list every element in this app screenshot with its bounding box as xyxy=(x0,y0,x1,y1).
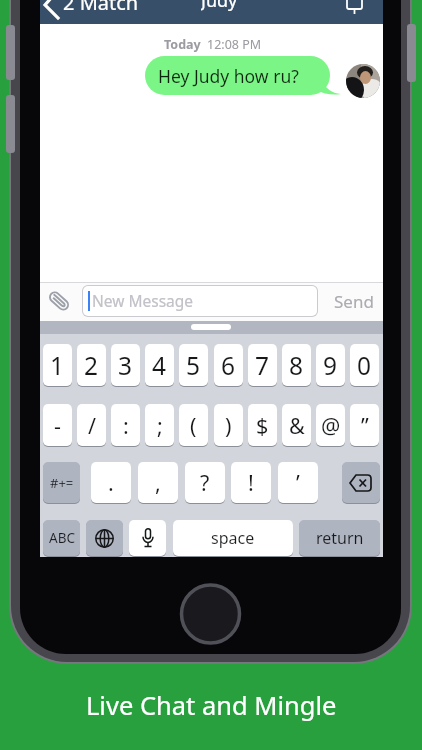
staticText: ) xyxy=(225,411,232,440)
button[interactable]: 5 xyxy=(179,344,208,386)
staticText: 2 xyxy=(84,349,99,382)
staticText: $ xyxy=(256,411,269,440)
button[interactable]: 6 xyxy=(214,344,243,386)
staticText: 6 xyxy=(221,349,236,382)
button[interactable]: ) xyxy=(214,404,243,446)
button[interactable]: / xyxy=(77,404,106,446)
staticText: ” xyxy=(361,411,369,440)
staticText: 8 xyxy=(289,349,304,382)
button[interactable] xyxy=(46,286,72,316)
button[interactable]: ’ xyxy=(278,462,318,503)
button[interactable]: 1 xyxy=(43,344,72,386)
button[interactable]: Send xyxy=(330,282,378,321)
staticText: ; xyxy=(157,411,163,440)
staticText: 7 xyxy=(255,349,270,382)
button[interactable]: ABC xyxy=(43,520,80,556)
button[interactable] xyxy=(129,520,166,556)
staticText: space xyxy=(211,527,255,549)
button[interactable]: & xyxy=(282,404,311,446)
button[interactable]: 0 xyxy=(350,344,379,386)
button[interactable]: space xyxy=(173,520,293,556)
staticText: 0 xyxy=(357,349,372,382)
staticText: Hey Judy how ru? xyxy=(158,64,299,88)
staticText: / xyxy=(88,411,96,440)
button[interactable]: 3 xyxy=(111,344,140,386)
staticText: 4 xyxy=(152,349,167,382)
button[interactable]: ” xyxy=(350,404,379,446)
button[interactable] xyxy=(342,462,380,503)
button[interactable]: @ xyxy=(316,404,345,446)
button[interactable]: 4 xyxy=(145,344,174,386)
staticText: 9 xyxy=(323,349,338,382)
button[interactable]: , xyxy=(138,462,178,503)
staticText: . xyxy=(108,468,114,497)
staticText: Today xyxy=(164,36,201,53)
button[interactable]: : xyxy=(111,404,140,446)
button[interactable]: ( xyxy=(179,404,208,446)
staticText: 3 xyxy=(118,349,133,382)
button[interactable]: 8 xyxy=(282,344,311,386)
button[interactable]: 9 xyxy=(316,344,345,386)
button[interactable]: New Message xyxy=(82,285,318,317)
button[interactable]: . xyxy=(91,462,131,503)
staticText: ? xyxy=(200,468,210,497)
button[interactable]: - xyxy=(43,404,72,446)
button[interactable]: ? xyxy=(185,462,225,503)
button[interactable]: 2 xyxy=(77,344,106,386)
staticText: ABC xyxy=(49,529,75,547)
staticText: : xyxy=(123,411,129,440)
staticText: return xyxy=(316,527,364,549)
staticText: 2 Match xyxy=(63,0,139,13)
staticText: Send xyxy=(334,290,374,313)
staticText: - xyxy=(54,411,61,440)
button[interactable]: return xyxy=(299,520,380,556)
staticText: ( xyxy=(190,411,197,440)
button[interactable] xyxy=(86,520,123,556)
button[interactable]: ; xyxy=(145,404,174,446)
staticText: @ xyxy=(321,411,341,440)
button[interactable]: 7 xyxy=(248,344,277,386)
staticText: , xyxy=(155,468,161,497)
staticText: Live Chat and Mingle xyxy=(86,688,337,723)
staticText: 12:08 PM xyxy=(207,36,262,53)
staticText: #+= xyxy=(50,474,74,492)
button[interactable]: ! xyxy=(231,462,271,503)
staticText: & xyxy=(289,411,305,440)
staticText: Judy xyxy=(201,0,238,12)
staticText: ! xyxy=(248,468,254,497)
button[interactable]: 2 Match xyxy=(40,0,160,13)
staticText: 5 xyxy=(186,349,201,382)
staticText: 1 xyxy=(50,349,65,382)
button[interactable]: #+= xyxy=(43,462,80,503)
button[interactable]: $ xyxy=(248,404,277,446)
staticText: ’ xyxy=(296,468,300,497)
staticText: New Message xyxy=(92,290,194,311)
